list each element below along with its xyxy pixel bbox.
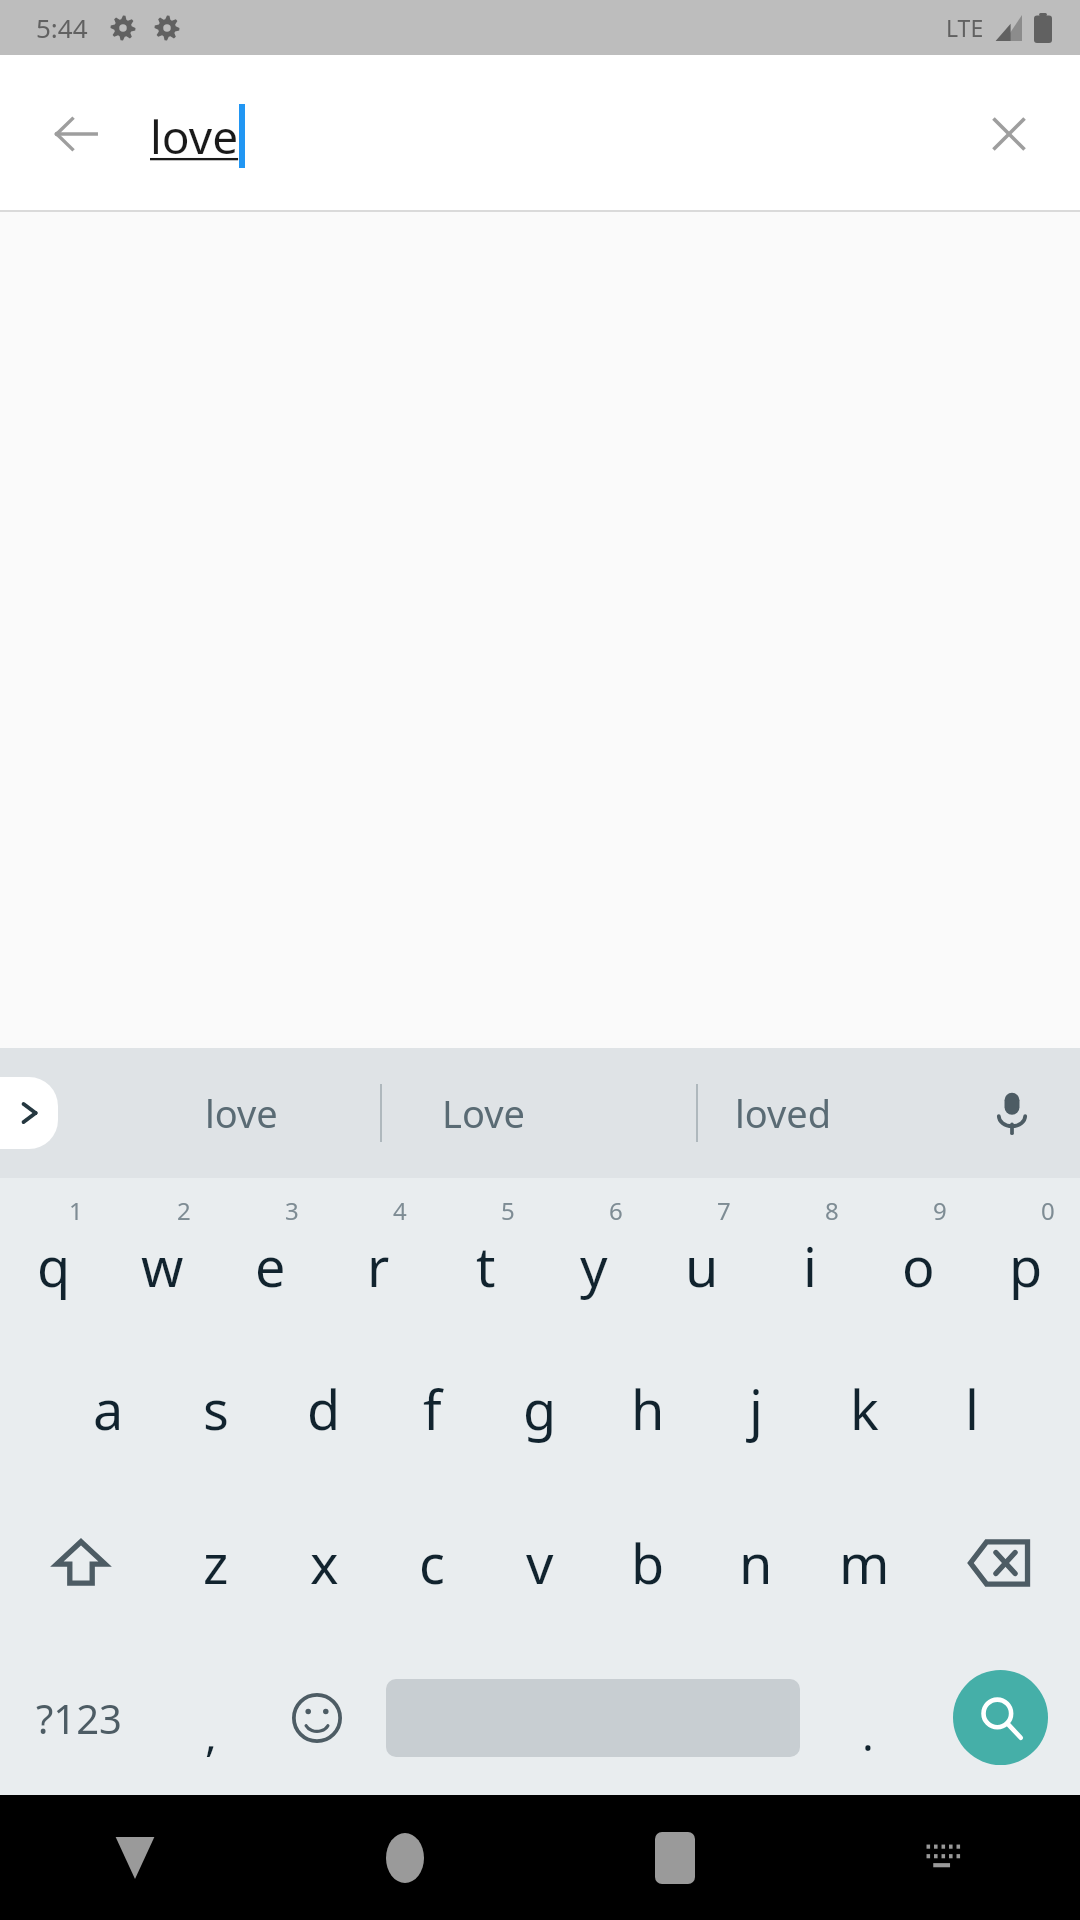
button[interactable]: d bbox=[270, 1332, 378, 1486]
staticText: 8 bbox=[825, 1194, 839, 1227]
button[interactable]: ?123 bbox=[0, 1640, 158, 1795]
button[interactable]: v bbox=[486, 1486, 594, 1640]
button[interactable]: Voice input bbox=[970, 1071, 1054, 1155]
staticText: n bbox=[739, 1526, 773, 1600]
button[interactable]: Search bbox=[921, 1640, 1080, 1795]
staticText: j bbox=[749, 1372, 763, 1446]
button[interactable]: 5 bbox=[432, 1178, 540, 1332]
staticText: ?123 bbox=[36, 1691, 122, 1745]
staticText: 5:44 bbox=[36, 10, 88, 45]
staticText: 7 bbox=[717, 1194, 731, 1227]
button[interactable]: Backspace bbox=[918, 1486, 1080, 1640]
staticText: . bbox=[862, 1704, 874, 1764]
staticText: m bbox=[839, 1526, 890, 1600]
staticText: t bbox=[476, 1229, 496, 1303]
staticText: Love bbox=[442, 1087, 525, 1139]
button[interactable]: More suggestions bbox=[0, 1077, 58, 1149]
staticText: 1 bbox=[69, 1194, 83, 1227]
staticText: b bbox=[631, 1526, 665, 1600]
button[interactable]: j bbox=[702, 1332, 810, 1486]
button[interactable]: 2 bbox=[108, 1178, 216, 1332]
button[interactable]: 4 bbox=[324, 1178, 432, 1332]
button[interactable]: Back bbox=[0, 1795, 270, 1920]
button[interactable]: 3 bbox=[216, 1178, 324, 1332]
button[interactable]: g bbox=[486, 1332, 594, 1486]
staticText: e bbox=[255, 1229, 286, 1303]
staticText: h bbox=[631, 1372, 665, 1446]
button[interactable]: k bbox=[810, 1332, 918, 1486]
staticText: f bbox=[423, 1372, 442, 1446]
staticText: LTE bbox=[946, 12, 984, 43]
button[interactable]: Shift bbox=[0, 1486, 162, 1640]
button[interactable]: c bbox=[378, 1486, 486, 1640]
staticText: y bbox=[580, 1229, 608, 1303]
button[interactable]: f bbox=[378, 1332, 486, 1486]
button[interactable]: 1 bbox=[0, 1178, 108, 1332]
staticText: s bbox=[203, 1372, 229, 1446]
staticText: love bbox=[205, 1087, 278, 1139]
staticText: i bbox=[803, 1229, 817, 1303]
staticText: 9 bbox=[933, 1194, 947, 1227]
staticText: q bbox=[37, 1229, 71, 1303]
staticText: 4 bbox=[393, 1194, 407, 1227]
button[interactable]: Switch keyboard bbox=[810, 1795, 1080, 1920]
button[interactable]: l bbox=[918, 1332, 1026, 1486]
staticText: k bbox=[850, 1372, 879, 1446]
button[interactable]: Back bbox=[30, 88, 122, 180]
staticText: 3 bbox=[285, 1194, 299, 1227]
staticText: 6 bbox=[609, 1194, 623, 1227]
button[interactable]: love bbox=[150, 105, 239, 168]
staticText: a bbox=[93, 1372, 124, 1446]
staticText: , bbox=[205, 1704, 217, 1764]
staticText: o bbox=[902, 1229, 935, 1303]
button[interactable]: m bbox=[810, 1486, 918, 1640]
button[interactable]: Love bbox=[388, 1048, 578, 1178]
staticText: u bbox=[685, 1229, 719, 1303]
button[interactable]: Recents bbox=[540, 1795, 810, 1920]
staticText: 5 bbox=[501, 1194, 515, 1227]
button[interactable]: Emoji bbox=[264, 1640, 370, 1795]
staticText: c bbox=[419, 1526, 445, 1600]
staticText: love bbox=[150, 105, 239, 168]
staticText: p bbox=[1009, 1229, 1043, 1303]
staticText: l bbox=[965, 1372, 979, 1446]
staticText: 2 bbox=[177, 1194, 191, 1227]
button[interactable]: s bbox=[162, 1332, 270, 1486]
button[interactable]: b bbox=[594, 1486, 702, 1640]
staticText: 0 bbox=[1041, 1194, 1055, 1227]
button[interactable]: love bbox=[146, 1048, 336, 1178]
staticText: z bbox=[203, 1526, 229, 1600]
button[interactable]: Home bbox=[270, 1795, 540, 1920]
staticText: r bbox=[367, 1229, 390, 1303]
staticText: x bbox=[310, 1526, 339, 1600]
button[interactable]: 9 bbox=[864, 1178, 972, 1332]
button[interactable]: loved bbox=[688, 1048, 878, 1178]
button[interactable]: x bbox=[270, 1486, 378, 1640]
button[interactable]: 0 bbox=[972, 1178, 1080, 1332]
staticText: w bbox=[141, 1229, 184, 1303]
staticText: loved bbox=[735, 1087, 832, 1139]
button[interactable]: Clear bbox=[966, 91, 1052, 177]
button[interactable]: n bbox=[702, 1486, 810, 1640]
button[interactable]: h bbox=[594, 1332, 702, 1486]
button[interactable]: 8 bbox=[756, 1178, 864, 1332]
button[interactable]: a bbox=[54, 1332, 162, 1486]
staticText: v bbox=[526, 1526, 554, 1600]
button[interactable]: , bbox=[158, 1640, 264, 1795]
button[interactable]: z bbox=[162, 1486, 270, 1640]
button[interactable]: . bbox=[815, 1640, 921, 1795]
staticText: d bbox=[307, 1372, 341, 1446]
button[interactable]: Space bbox=[370, 1640, 815, 1795]
button[interactable]: 6 bbox=[540, 1178, 648, 1332]
staticText: g bbox=[523, 1372, 557, 1446]
button[interactable]: 7 bbox=[648, 1178, 756, 1332]
